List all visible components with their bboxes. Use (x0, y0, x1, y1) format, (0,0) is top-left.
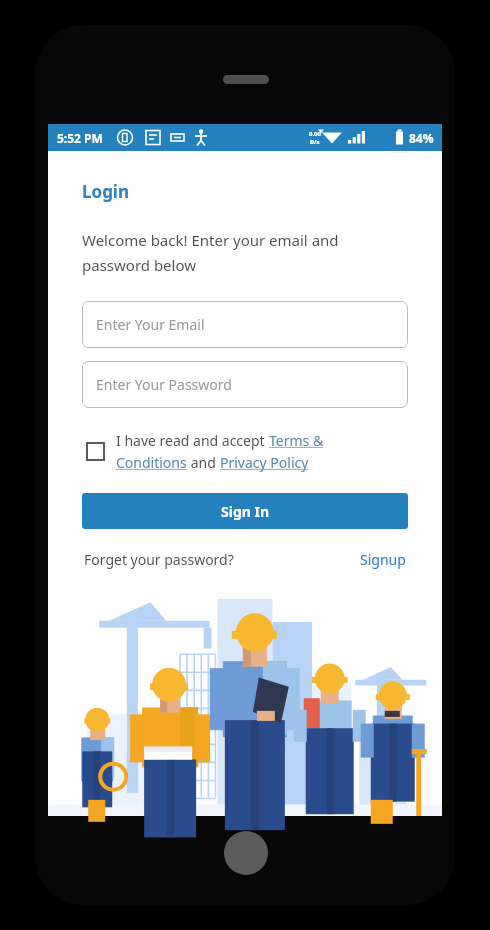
staticText: 0.00 (309, 130, 321, 138)
staticText: B/s (310, 138, 320, 146)
other: Accept terms checkbox (86, 442, 105, 461)
staticText: Enter Your Email (96, 315, 205, 334)
button[interactable]: Sign In (82, 493, 408, 529)
button[interactable]: Enter Your Email (82, 301, 408, 348)
staticText: password below (82, 255, 197, 275)
staticText: Enter Your Password (96, 375, 232, 394)
staticText: 84% (409, 130, 434, 146)
staticText: Sign In (221, 502, 270, 521)
staticText: Welcome back! Enter your email and (82, 230, 339, 250)
staticText: Conditions (116, 453, 187, 472)
staticText: Terms & (269, 431, 324, 450)
button[interactable]: Home (224, 831, 268, 875)
button[interactable]: Signup (360, 550, 406, 569)
staticText: Login (82, 180, 130, 203)
staticText: I have read and accept (116, 431, 269, 450)
button[interactable]: Accept terms checkbox (86, 431, 422, 472)
button[interactable]: Forget your password? (84, 550, 234, 569)
staticText: and (187, 453, 220, 472)
staticText: Privacy Policy (220, 453, 309, 472)
staticText: Forget your password? (84, 550, 234, 569)
button[interactable]: Enter Your Password (82, 361, 408, 408)
staticText: Signup (360, 550, 406, 569)
staticText: 5:52 PM (57, 130, 103, 146)
